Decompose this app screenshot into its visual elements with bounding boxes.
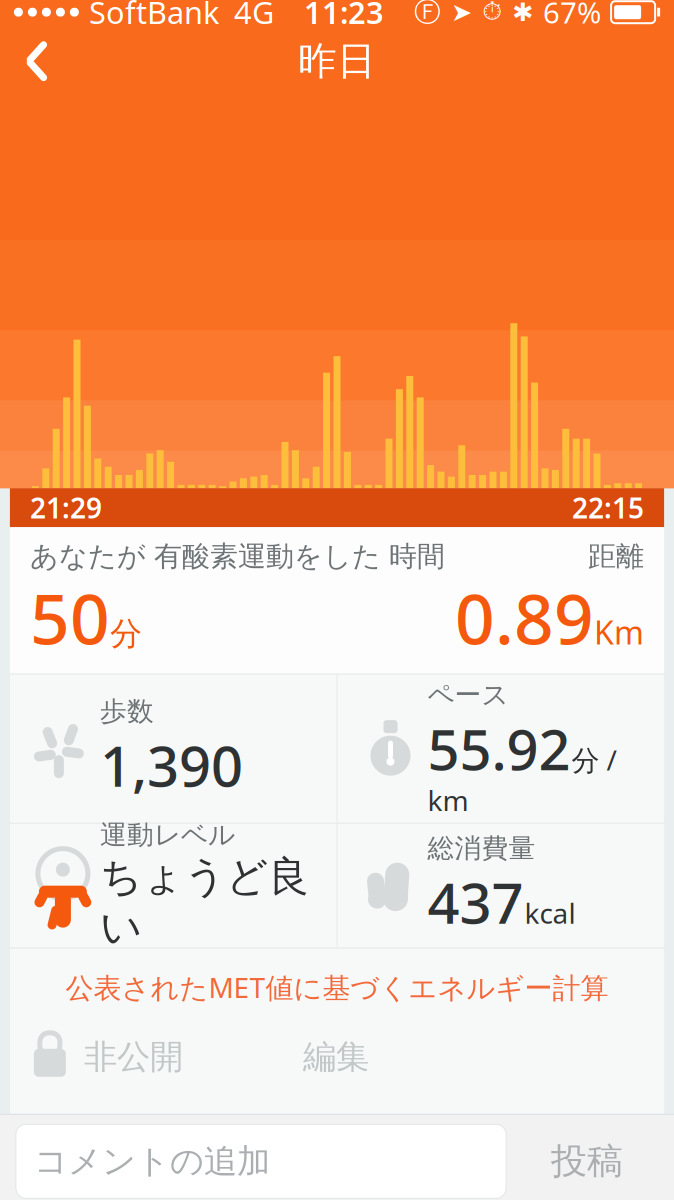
staticText: ✱ (512, 0, 533, 27)
staticText: 運動レベル (100, 818, 235, 851)
button[interactable]: 公表されたMET値に基づくエネルギー計算 (10, 949, 664, 1026)
button[interactable]: 投稿 (506, 1124, 668, 1198)
staticText: 歩数 (100, 695, 154, 728)
staticText: ペース (427, 678, 508, 711)
staticText: 昨日 (298, 37, 376, 85)
staticText: 距離 (588, 539, 644, 574)
staticText: Ⓕ (414, 0, 441, 29)
button[interactable]: ペース (337, 675, 664, 823)
button[interactable]: 総消費量 (337, 824, 664, 948)
staticText: 55.92 (427, 711, 570, 786)
staticText: 分 / (571, 741, 616, 778)
staticText: 分 (110, 614, 142, 653)
staticText: 437 (427, 865, 523, 939)
staticText: ➤ (451, 0, 472, 27)
button[interactable]: 運動レベル (10, 824, 336, 948)
staticText: 21:29 (30, 489, 102, 526)
staticText: SoftBank (89, 0, 219, 32)
staticText: 非公開 (84, 1036, 183, 1077)
staticText: 公表されたMET値に基づくエネルギー計算 (65, 969, 608, 1006)
staticText: コメントの追加 (34, 1141, 270, 1182)
staticText: km (427, 782, 468, 819)
button[interactable]: 非公開 (32, 1026, 183, 1088)
staticText: kcal (524, 894, 575, 931)
staticText: 投稿 (551, 1139, 623, 1183)
button[interactable]: 歩数 (10, 675, 336, 823)
staticText: 総消費量 (427, 832, 535, 865)
staticText: Km (594, 611, 644, 653)
staticText: 4G (234, 0, 274, 32)
staticText: ちょうど良い (100, 851, 309, 953)
staticText: 67% (543, 0, 601, 32)
button[interactable]: Back (2, 31, 72, 91)
staticText: 22:15 (572, 489, 644, 526)
staticText: 1,390 (100, 728, 243, 802)
staticText: 11:23 (304, 0, 384, 32)
staticText: 編集 (303, 1036, 369, 1077)
button[interactable]: 編集 (303, 1030, 369, 1083)
button[interactable]: コメントの追加 (16, 1124, 506, 1198)
staticText: ⏱ (482, 0, 502, 24)
staticText: 0.89 (455, 572, 594, 664)
staticText: 50 (30, 572, 110, 664)
staticText: あなたが 有酸素運動をした 時間 (30, 539, 445, 574)
